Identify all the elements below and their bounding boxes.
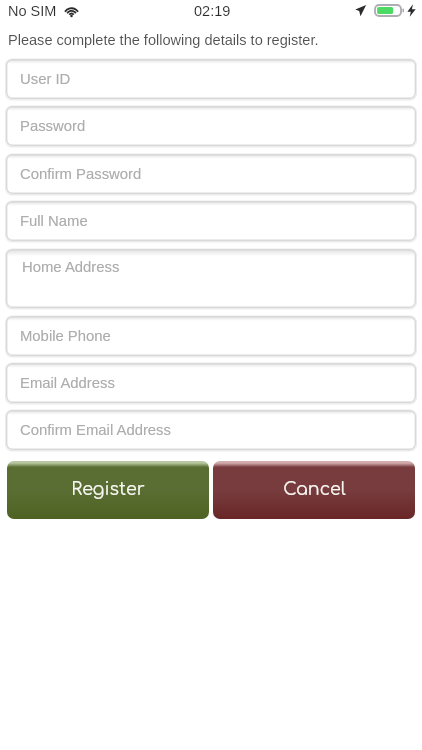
button[interactable]: Register — [7, 461, 209, 519]
button[interactable]: Cancel — [213, 461, 415, 519]
staticText: Cancel — [283, 480, 346, 500]
staticText: Full Name — [20, 213, 88, 230]
staticText: Confirm Password — [20, 166, 142, 183]
staticText: User ID — [20, 71, 71, 88]
staticText: Mobile Phone — [20, 328, 111, 345]
button[interactable]: User ID — [6, 59, 416, 99]
staticText: Home Address — [22, 259, 120, 276]
staticText: Register — [71, 480, 145, 500]
staticText: Confirm Email Address — [20, 422, 171, 439]
staticText: Password — [20, 118, 86, 135]
button[interactable]: Home Address — [6, 249, 416, 308]
staticText: Email Address — [20, 375, 115, 392]
button[interactable]: Confirm Email Address — [6, 410, 416, 450]
button[interactable]: Password — [6, 106, 416, 146]
staticText: No SIM — [8, 3, 57, 19]
button[interactable]: Full Name — [6, 201, 416, 241]
staticText: 02:19 — [194, 3, 231, 19]
staticText: Please complete the following details to… — [8, 32, 319, 48]
button[interactable]: Confirm Password — [6, 154, 416, 194]
button[interactable]: Mobile Phone — [6, 316, 416, 356]
button[interactable]: Email Address — [6, 363, 416, 403]
